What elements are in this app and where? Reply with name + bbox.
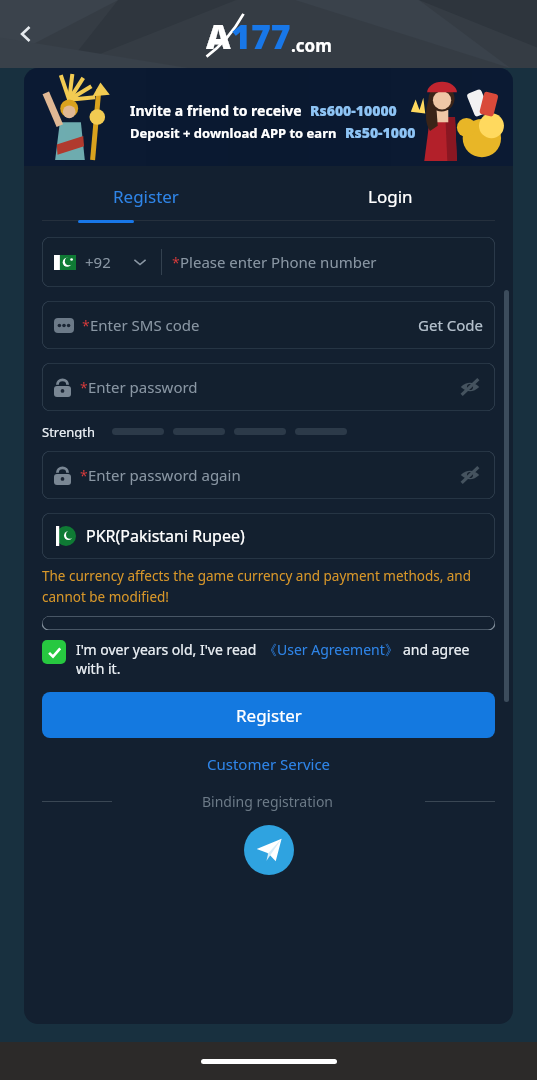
- staticText: Login: [368, 185, 413, 208]
- staticText: 177: [231, 13, 291, 59]
- staticText: Get Code: [418, 315, 483, 335]
- button[interactable]: Show password: [457, 462, 483, 488]
- button[interactable]: Telegram: [244, 825, 294, 875]
- staticText: 《User Agreement》: [263, 640, 399, 659]
- staticText: and agree: [403, 640, 470, 659]
- staticText: Rs600-10000: [310, 101, 397, 120]
- staticText: *: [80, 466, 88, 485]
- staticText: Rs50-1000: [345, 123, 416, 142]
- staticText: Enter password again: [88, 465, 241, 485]
- staticText: I'm over years old, I've read: [76, 640, 257, 659]
- button[interactable]: Customer Service: [42, 754, 495, 774]
- button[interactable]: Get Code: [418, 315, 483, 335]
- staticText: Deposit + download APP to earn: [130, 124, 337, 142]
- button[interactable]: Show password: [457, 374, 483, 400]
- staticText: .com: [291, 34, 332, 57]
- button[interactable]: +92: [42, 237, 495, 287]
- button[interactable]: *: [42, 451, 495, 499]
- button[interactable]: 《User Agreement》: [263, 640, 399, 659]
- staticText: *: [82, 316, 90, 335]
- staticText: with it.: [76, 659, 121, 678]
- staticText: Invite a friend to receive: [130, 101, 302, 120]
- staticText: Register: [113, 185, 179, 208]
- staticText: *: [172, 253, 180, 272]
- button[interactable]: Login: [268, 178, 513, 214]
- staticText: The currency affects the game currency a…: [42, 567, 495, 606]
- staticText: Enter SMS code: [90, 315, 200, 335]
- staticText: Please enter Phone number: [180, 252, 377, 272]
- staticText: Customer Service: [207, 754, 331, 774]
- staticText: PKR(Pakistani Rupee): [86, 525, 245, 547]
- staticText: +92: [85, 252, 111, 272]
- button[interactable]: PKR(Pakistani Rupee): [42, 513, 495, 559]
- staticText: A: [206, 13, 231, 59]
- button[interactable]: Register: [24, 178, 268, 214]
- button[interactable]: Back: [4, 12, 48, 56]
- staticText: Register: [236, 704, 302, 727]
- button[interactable]: I'm over years old, I've read: [42, 640, 495, 678]
- staticText: Strength: [42, 423, 96, 439]
- button[interactable]: *: [42, 301, 495, 349]
- staticText: Binding registration: [202, 792, 334, 811]
- staticText: Enter password: [88, 377, 198, 397]
- button[interactable]: Register: [42, 692, 495, 738]
- button[interactable]: *: [42, 363, 495, 411]
- staticText: *: [80, 378, 88, 397]
